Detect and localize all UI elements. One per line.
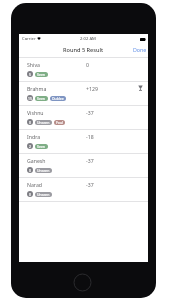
staticText: Unseen — [37, 168, 50, 173]
button[interactable]: Done — [131, 34, 149, 57]
staticText: 0 — [86, 61, 89, 68]
staticText: -18 — [86, 133, 94, 140]
staticText: Unseen — [37, 120, 50, 125]
staticText: Indra — [27, 133, 41, 140]
staticText: -37 — [86, 157, 94, 164]
staticText: Shiva — [27, 61, 40, 68]
button[interactable]: Ganesh — [19, 154, 148, 178]
staticText: Brahma — [27, 85, 47, 92]
staticText: 15 — [28, 96, 32, 101]
staticText: 2 — [29, 144, 31, 149]
staticText: 0 — [29, 192, 31, 197]
staticText: +129 — [86, 85, 98, 92]
other: Winner trophy — [138, 85, 143, 91]
button[interactable]: Indra — [19, 130, 148, 154]
staticText: Vishnu — [27, 109, 44, 116]
button[interactable]: Vishnu — [19, 106, 148, 130]
staticText: 0 — [29, 168, 31, 173]
staticText: Carrier — [22, 36, 36, 42]
staticText: Ganesh — [27, 157, 46, 164]
staticText: Seen — [37, 96, 46, 101]
staticText: Foul — [56, 120, 63, 125]
staticText: Seen — [37, 144, 46, 149]
button[interactable]: Narad — [19, 178, 148, 202]
staticText: 2:02 AM — [80, 36, 96, 42]
staticText: 0 — [29, 120, 31, 125]
staticText: -37 — [86, 109, 94, 116]
staticText: Round 5 Result — [63, 46, 104, 54]
staticText: 5 — [29, 72, 31, 77]
staticText: Seen — [37, 72, 46, 77]
other: Home — [73, 273, 92, 292]
button[interactable]: Shiva — [19, 58, 148, 82]
staticText: Dublee — [52, 96, 64, 101]
staticText: Unseen — [37, 192, 50, 197]
staticText: -37 — [86, 181, 94, 188]
staticText: Narad — [27, 181, 42, 188]
button[interactable]: Brahma — [19, 82, 148, 106]
staticText: Done — [133, 46, 147, 53]
